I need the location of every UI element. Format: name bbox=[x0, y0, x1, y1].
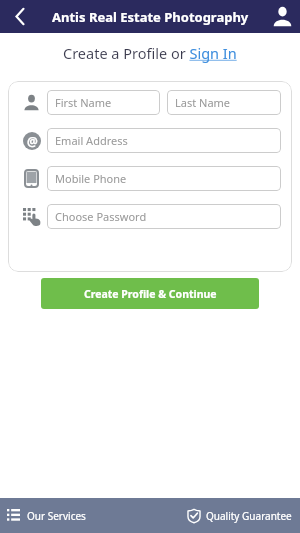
staticText: Create a Profile or Sign In bbox=[63, 43, 237, 63]
button[interactable]: First Name bbox=[47, 90, 160, 115]
button[interactable]: Choose Password bbox=[47, 204, 281, 229]
staticText: Quality Guarantee bbox=[206, 509, 292, 523]
staticText: Email Address bbox=[55, 133, 128, 148]
staticText: Choose Password bbox=[55, 209, 147, 224]
staticText: Last Name bbox=[175, 95, 231, 110]
button[interactable] bbox=[0, 0, 40, 33]
button[interactable]: Email Address bbox=[47, 128, 281, 153]
button[interactable] bbox=[264, 0, 300, 33]
button[interactable]: Last Name bbox=[167, 90, 281, 115]
button[interactable]: Quality Guarantee bbox=[187, 498, 300, 533]
staticText: Create Profile & Continue bbox=[84, 287, 217, 301]
staticText: @ bbox=[27, 133, 38, 149]
button[interactable]: Create Profile & Continue bbox=[41, 278, 259, 309]
staticText: Antis Real Estate Photography bbox=[52, 8, 249, 26]
button[interactable]: Create a Profile or Sign In bbox=[0, 43, 300, 63]
staticText: Mobile Phone bbox=[55, 171, 127, 186]
staticText: First Name bbox=[55, 95, 112, 110]
staticText: Our Services bbox=[27, 509, 86, 523]
button[interactable]: Our Services bbox=[0, 498, 86, 533]
button[interactable]: Mobile Phone bbox=[47, 166, 281, 191]
